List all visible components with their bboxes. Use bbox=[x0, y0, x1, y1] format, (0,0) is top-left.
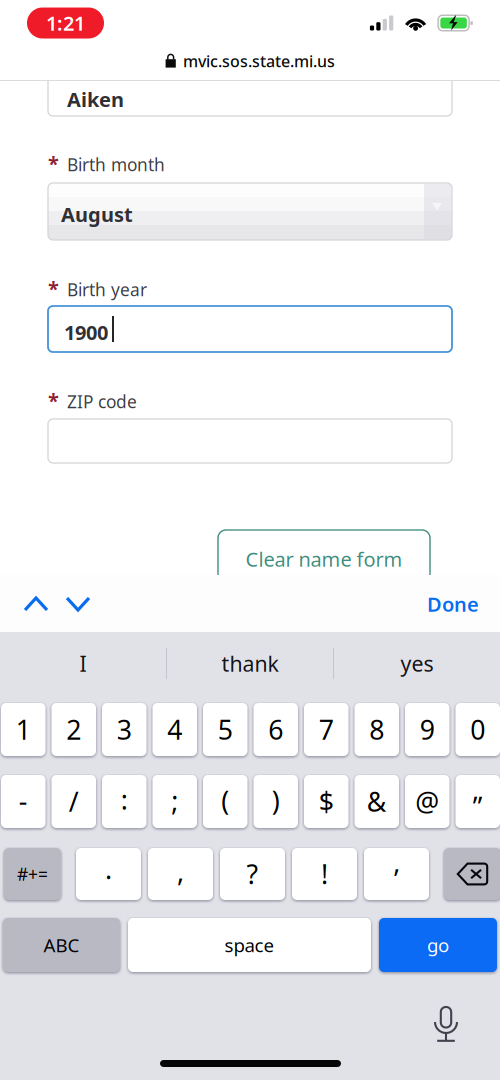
staticText: Clear name form bbox=[245, 546, 402, 572]
button[interactable]: Done bbox=[401, 578, 479, 630]
staticText: & bbox=[367, 784, 387, 819]
button[interactable]: ABC bbox=[3, 918, 120, 972]
staticText: Birth month bbox=[67, 153, 165, 176]
staticText: mvic.sos.state.mi.us bbox=[183, 50, 335, 72]
staticText: ZIP code bbox=[67, 390, 137, 413]
button[interactable]: 2 bbox=[51, 703, 96, 756]
staticText: Aiken bbox=[67, 86, 124, 113]
button[interactable]: Delete bbox=[444, 848, 500, 900]
button[interactable]: 7 bbox=[304, 703, 348, 756]
staticText: ! bbox=[321, 856, 328, 892]
button[interactable]: I bbox=[0, 632, 166, 695]
staticText: space bbox=[224, 933, 274, 957]
staticText: 4 bbox=[167, 712, 182, 747]
button[interactable]: thank bbox=[167, 632, 333, 695]
staticText: I bbox=[79, 649, 86, 678]
staticText: ABC bbox=[43, 933, 79, 957]
button[interactable]: 6 bbox=[253, 703, 298, 756]
staticText: ’ bbox=[394, 861, 399, 897]
staticText: 7 bbox=[319, 712, 334, 747]
staticText: 0 bbox=[470, 712, 485, 747]
staticText: 8 bbox=[369, 712, 384, 747]
button[interactable]: 1 bbox=[1, 703, 45, 756]
button[interactable]: 5 bbox=[203, 703, 247, 756]
button[interactable]: $ bbox=[304, 775, 348, 828]
button[interactable]: Clear name form bbox=[218, 530, 430, 588]
staticText: #+= bbox=[17, 862, 48, 885]
button[interactable]: ’ bbox=[364, 848, 429, 900]
button[interactable]: Previous field bbox=[13, 578, 59, 630]
staticText: * bbox=[48, 150, 59, 177]
button[interactable]: space bbox=[128, 918, 371, 972]
staticText: Birth year bbox=[67, 278, 147, 301]
button[interactable]: ? bbox=[220, 848, 285, 900]
staticText: $ bbox=[319, 784, 334, 819]
button[interactable]: , bbox=[148, 848, 213, 900]
button[interactable]: ) bbox=[253, 775, 298, 828]
staticText: ( bbox=[221, 783, 229, 818]
button[interactable]: ” bbox=[455, 775, 500, 828]
button[interactable]: ( bbox=[203, 775, 247, 828]
button[interactable]: : bbox=[102, 775, 146, 828]
staticText: . bbox=[105, 851, 112, 887]
button[interactable]: @ bbox=[405, 775, 449, 828]
staticText: 6 bbox=[268, 712, 283, 747]
staticText: 2 bbox=[66, 712, 81, 747]
staticText: , bbox=[177, 853, 184, 889]
staticText: August bbox=[61, 201, 133, 228]
staticText: 9 bbox=[420, 712, 435, 747]
button[interactable]: Next field bbox=[55, 578, 101, 630]
staticText: @ bbox=[415, 784, 439, 819]
button[interactable]: Dictate bbox=[426, 1002, 466, 1046]
button[interactable]: 3 bbox=[102, 703, 146, 756]
staticText: ” bbox=[473, 789, 483, 824]
button[interactable]: ; bbox=[152, 775, 197, 828]
button[interactable]: 4 bbox=[152, 703, 197, 756]
button[interactable]: yes bbox=[334, 632, 500, 695]
button[interactable]: #+= bbox=[4, 848, 61, 900]
staticText: * bbox=[48, 387, 59, 414]
staticText: 1 bbox=[16, 712, 31, 747]
staticText: / bbox=[69, 784, 79, 819]
button[interactable]: 9 bbox=[405, 703, 449, 756]
staticText: ; bbox=[171, 783, 178, 818]
staticText: 3 bbox=[117, 712, 132, 747]
staticText: 1:21 bbox=[46, 10, 85, 36]
staticText: : bbox=[121, 782, 128, 817]
button[interactable]: . bbox=[76, 848, 141, 900]
staticText: 1900 bbox=[64, 319, 108, 346]
staticText: 5 bbox=[218, 712, 233, 747]
staticText: * bbox=[48, 275, 59, 302]
staticText: yes bbox=[400, 649, 433, 678]
button[interactable]: / bbox=[51, 775, 96, 828]
staticText: ? bbox=[246, 856, 258, 892]
button[interactable]: & bbox=[354, 775, 399, 828]
button[interactable]: 8 bbox=[354, 703, 399, 756]
staticText: ) bbox=[272, 783, 280, 818]
staticText: go bbox=[427, 933, 449, 957]
button[interactable]: 0 bbox=[455, 703, 500, 756]
button[interactable]: go bbox=[379, 918, 497, 972]
button[interactable]: ! bbox=[292, 848, 357, 900]
button[interactable]: - bbox=[1, 775, 45, 828]
staticText: Done bbox=[427, 591, 479, 617]
staticText: thank bbox=[221, 649, 278, 678]
staticText: - bbox=[19, 783, 28, 818]
